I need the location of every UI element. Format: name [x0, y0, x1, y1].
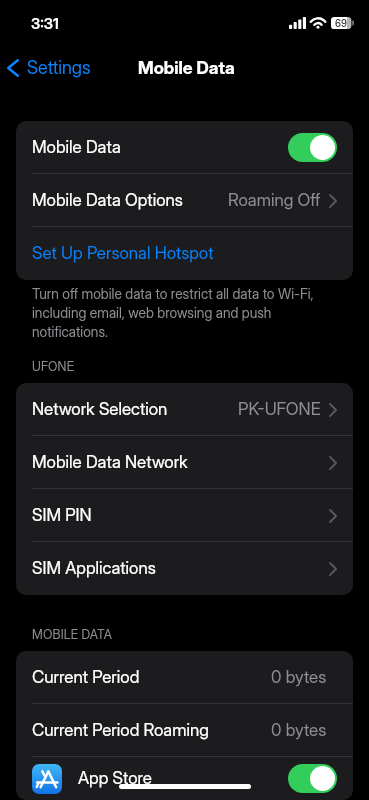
button[interactable]: SIM PIN: [16, 489, 353, 542]
button[interactable]: Toggle: [288, 764, 337, 793]
staticText: 69: [335, 17, 347, 29]
staticText: 3:31: [31, 14, 59, 32]
staticText: 0 bytes: [271, 720, 327, 741]
staticText: Mobile Data: [138, 57, 235, 78]
button[interactable]: Current Period: [16, 651, 353, 704]
staticText: Mobile Data Network: [32, 452, 188, 473]
button[interactable]: Set Up Personal Hotspot: [16, 227, 353, 280]
staticText: Roaming Off: [228, 190, 321, 211]
button[interactable]: Mobile Data Options: [16, 174, 353, 227]
staticText: UFONE: [32, 359, 75, 374]
staticText: Mobile Data Options: [32, 190, 183, 211]
staticText: SIM PIN: [32, 505, 92, 526]
staticText: App Store: [78, 768, 152, 789]
button[interactable]: App Store: [16, 757, 353, 800]
button[interactable]: Toggle: [288, 133, 337, 162]
staticText: Settings: [27, 57, 91, 79]
staticText: SIM Applications: [32, 558, 156, 579]
staticText: Current Period: [32, 667, 140, 688]
button[interactable]: Current Period Roaming: [16, 704, 353, 757]
staticText: 0 bytes: [271, 667, 327, 688]
staticText: MOBILE DATA: [32, 627, 112, 642]
button[interactable]: SIM Applications: [16, 542, 353, 595]
staticText: Mobile Data: [32, 137, 121, 158]
button[interactable]: Mobile Data: [16, 121, 353, 174]
staticText: Set Up Personal Hotspot: [32, 243, 214, 264]
staticText: Current Period Roaming: [32, 720, 209, 741]
staticText: PK-UFONE: [238, 399, 321, 420]
button[interactable]: Settings: [7, 57, 91, 79]
button[interactable]: Mobile Data Network: [16, 436, 353, 489]
button[interactable]: Network Selection: [16, 383, 353, 436]
staticText: Turn off mobile data to restrict all dat…: [32, 286, 331, 340]
staticText: Network Selection: [32, 399, 168, 420]
